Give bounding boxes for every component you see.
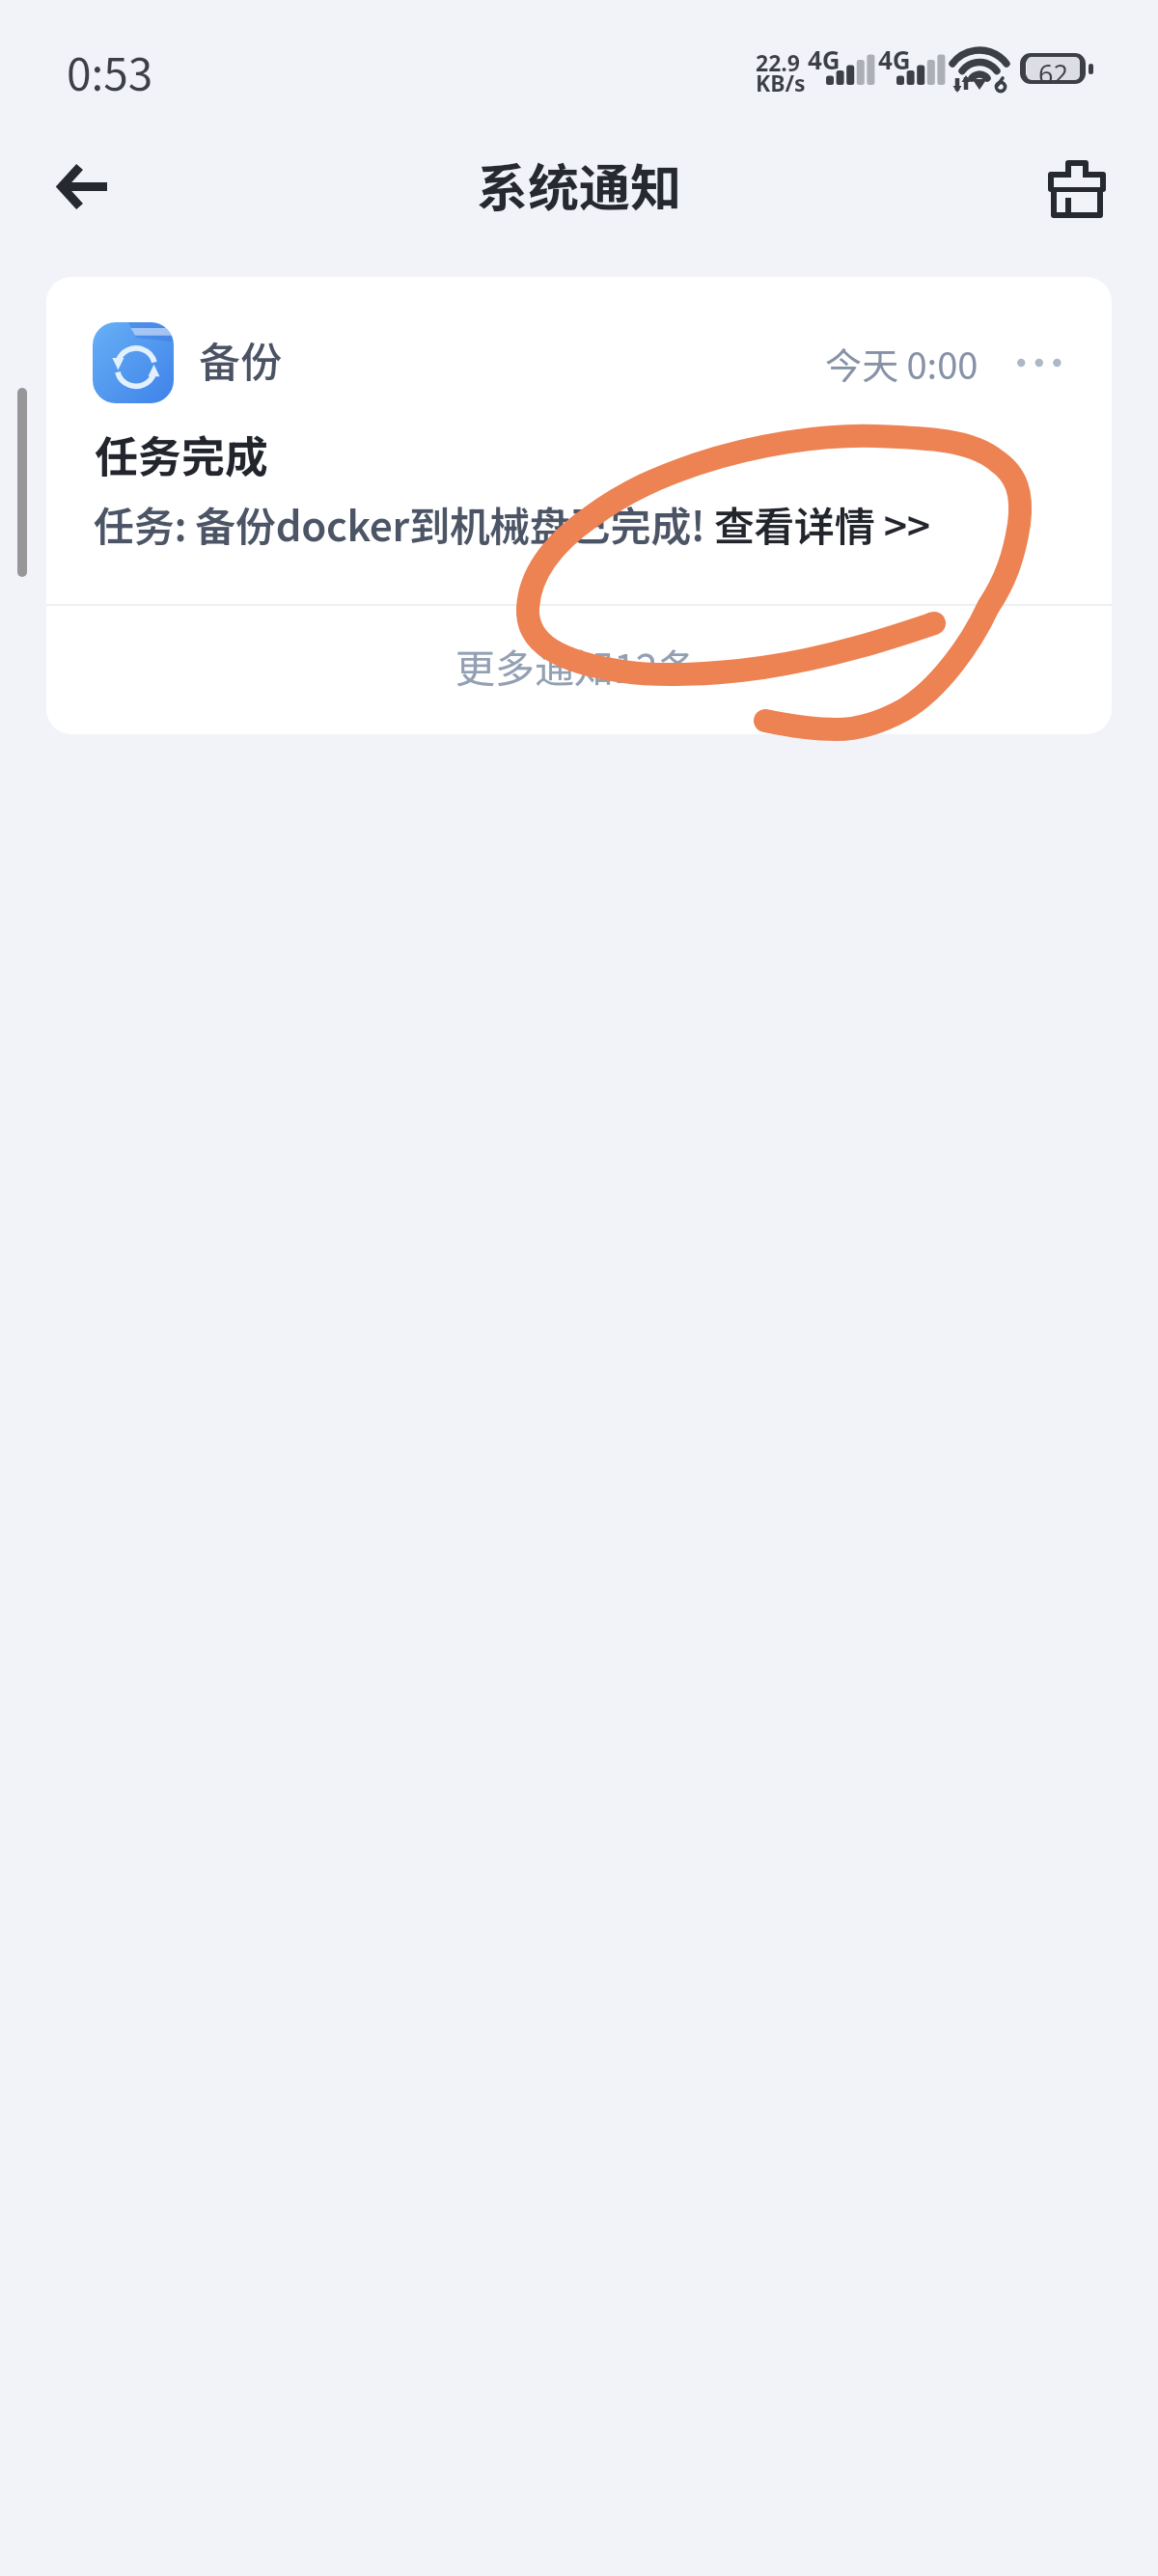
staticText: 0:53 [67,40,153,104]
button[interactable]: 更多通知12条 [46,606,1112,734]
staticText: 任务完成 [95,423,269,485]
button[interactable]: 备份 [46,277,1112,604]
staticText: 4G [878,42,911,76]
staticText: 62 [1038,56,1068,92]
button[interactable]: Back [33,138,129,234]
button[interactable]: Clear all notifications [1029,141,1125,237]
staticText: 22.9 [756,47,800,77]
staticText: 今天 0:00 [825,337,979,390]
staticText: 任务: 备份docker到机械盘已完成! 查看详情 >> [94,494,930,553]
staticText: 备份 [199,329,282,389]
button[interactable]: More options [1017,341,1061,385]
staticText: KB/s [756,68,806,97]
staticText: 系统通知 [477,148,681,222]
staticText: 4G [808,42,841,76]
staticText: 更多通知12条 [455,637,698,694]
